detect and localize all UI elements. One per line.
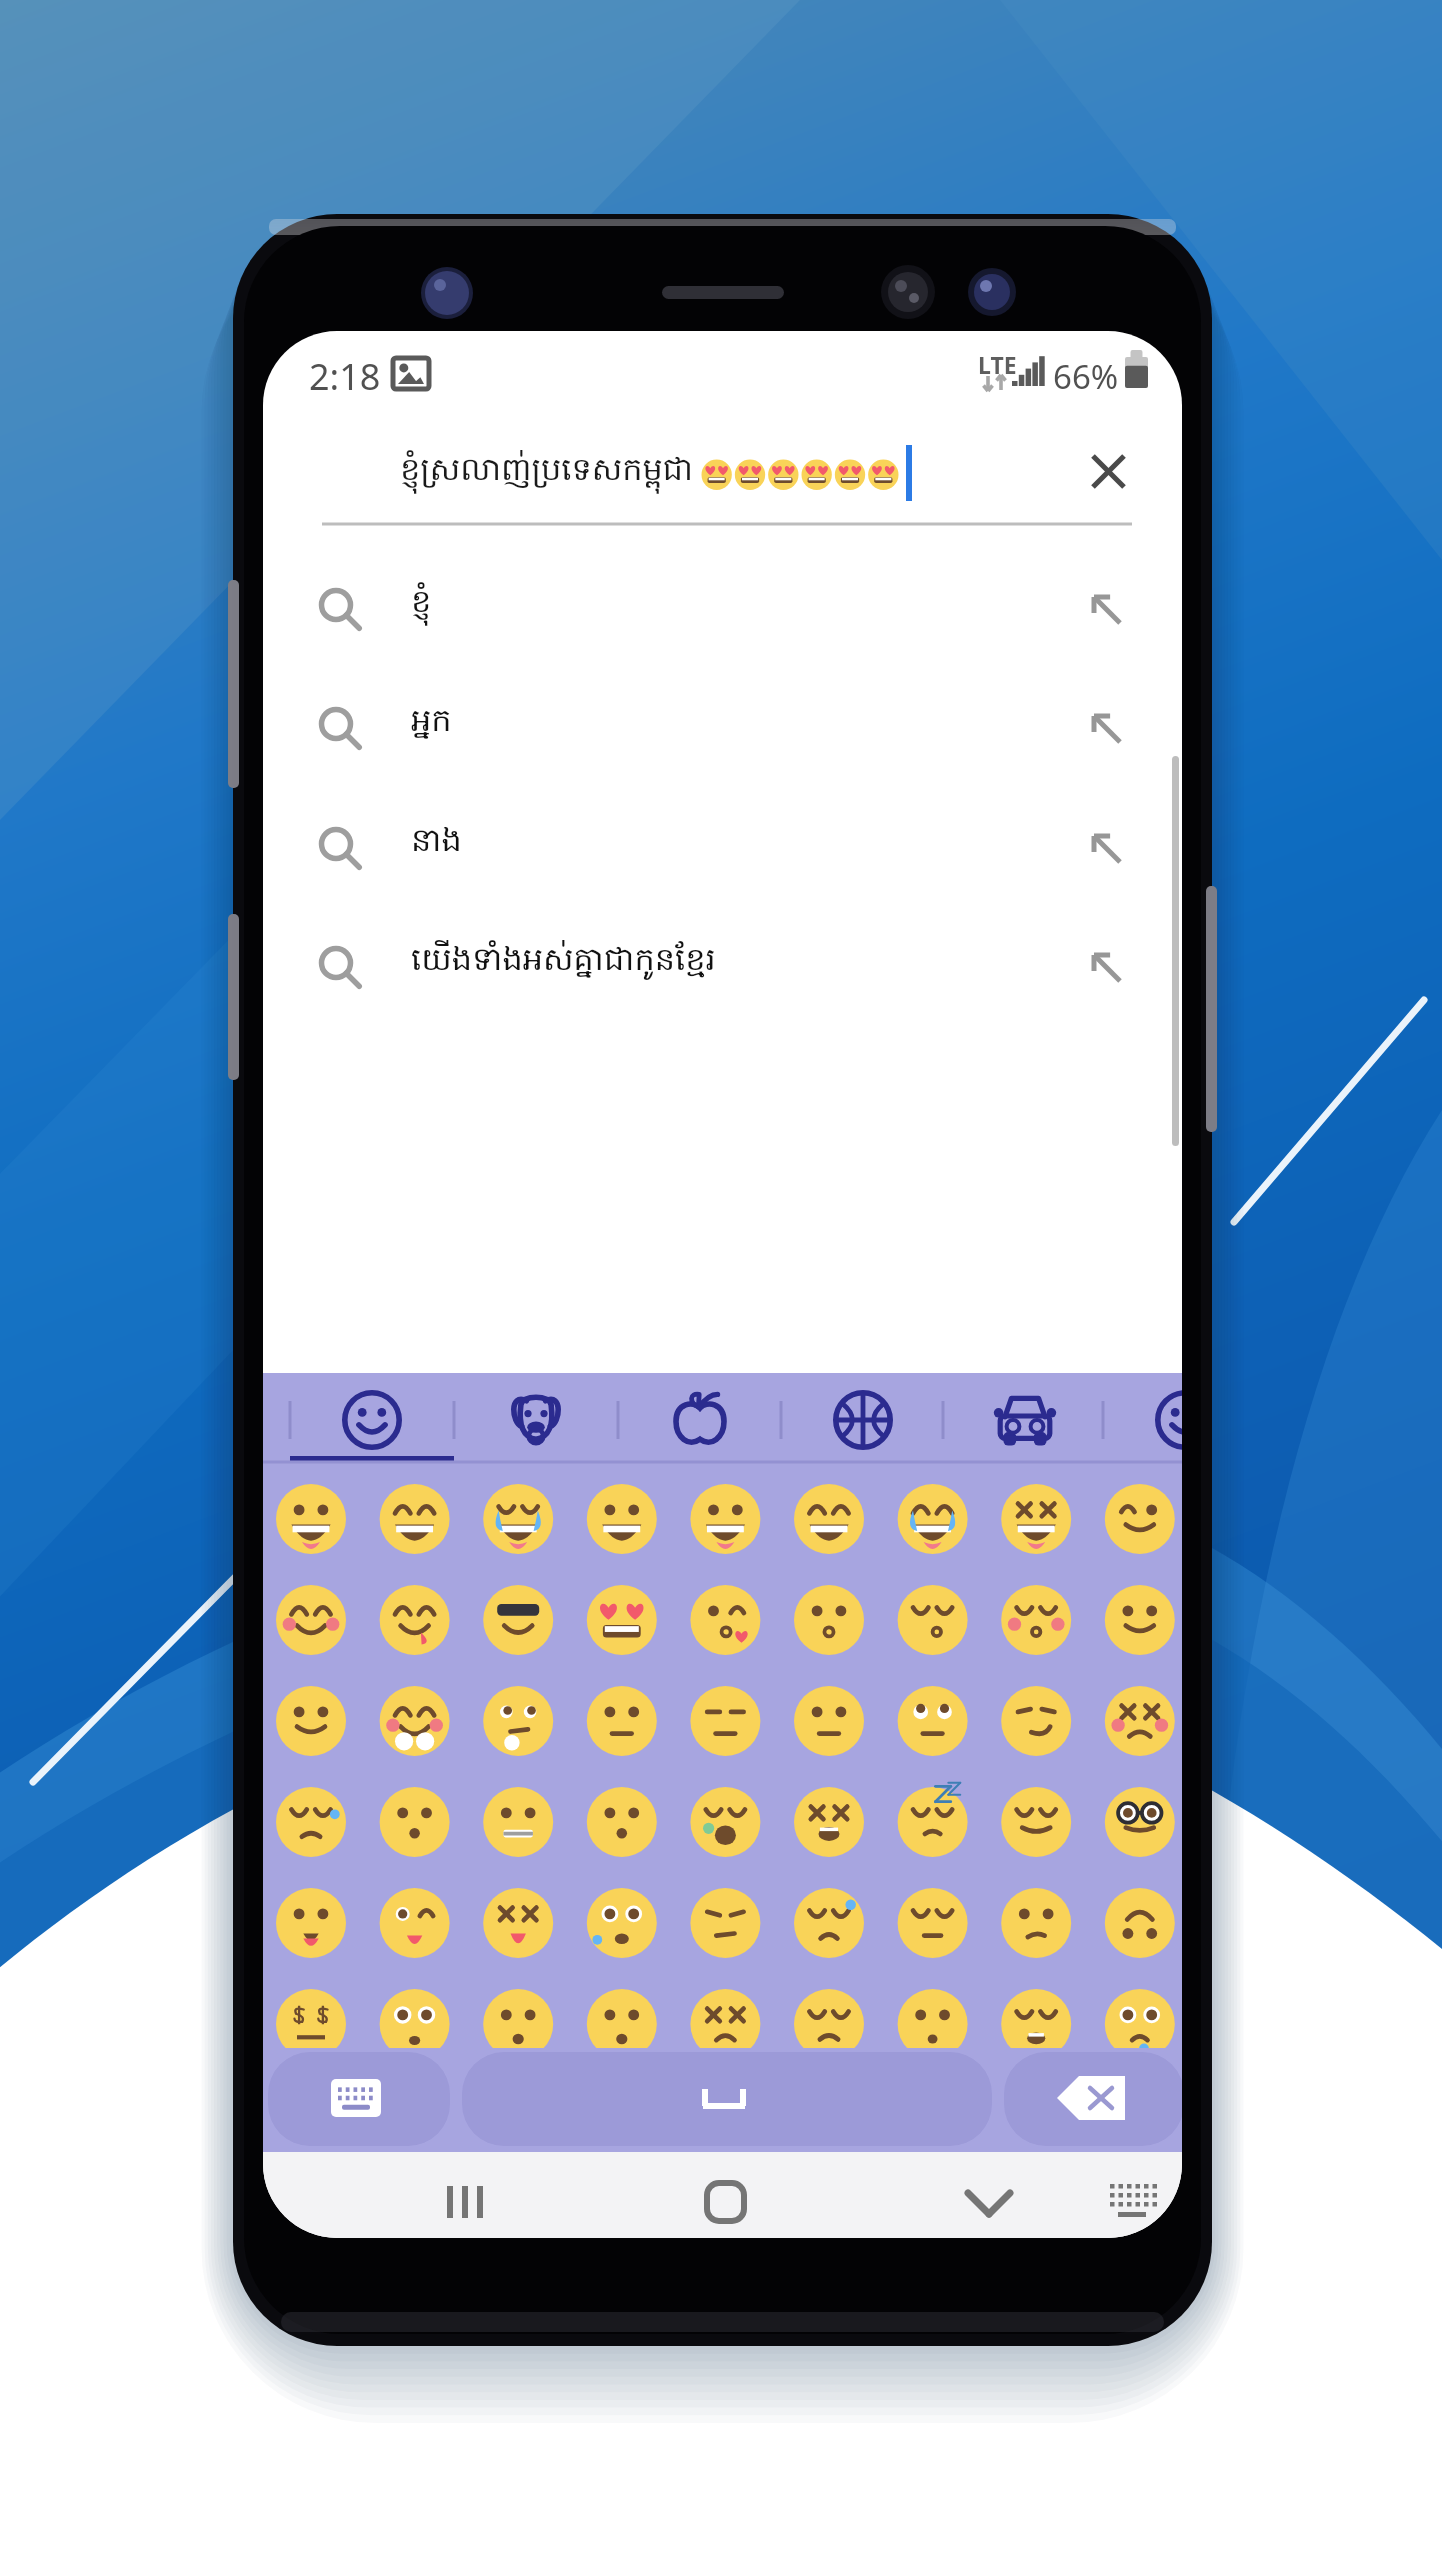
button[interactable]: More emoji xyxy=(1103,1373,1267,1462)
button[interactable]: Emoji xyxy=(570,1484,674,1585)
button[interactable]: Emoji xyxy=(466,1484,570,1585)
staticText: យើងទាំងអស់គ្នាជាកូនខ្មែរ xyxy=(411,939,716,986)
button[interactable]: Emoji xyxy=(570,1787,674,1888)
button[interactable]: Emoji xyxy=(570,1989,674,2090)
button[interactable]: Activity xyxy=(781,1373,945,1462)
button[interactable]: Backspace xyxy=(1004,2052,1184,2146)
button[interactable]: Food and drink xyxy=(618,1373,782,1462)
button[interactable]: Travel and places xyxy=(943,1373,1107,1462)
button[interactable]: Emoji xyxy=(466,1989,570,2090)
button[interactable]: Emoji xyxy=(984,1888,1088,1989)
button[interactable]: Emoji xyxy=(259,1585,363,1686)
button[interactable]: យើងទាំងអស់គ្នាជាកូនខ្មែរ xyxy=(263,904,1182,1020)
button[interactable]: Emoji xyxy=(259,1686,363,1787)
button[interactable]: Insert suggestion xyxy=(1062,799,1152,887)
button[interactable]: អ្នក xyxy=(263,665,1182,781)
button[interactable]: Emoji xyxy=(1088,1787,1192,1888)
button[interactable]: Emoji xyxy=(1088,1989,1192,2090)
button[interactable]: Emoji xyxy=(881,1585,985,1686)
button[interactable]: Emoji xyxy=(1088,1585,1192,1686)
button[interactable]: Emoji xyxy=(777,1989,881,2090)
button[interactable]: Emoji xyxy=(1088,1686,1192,1787)
button[interactable]: Insert suggestion xyxy=(1062,679,1152,767)
button[interactable]: Emoji xyxy=(466,1787,570,1888)
button[interactable]: Emoji xyxy=(881,1787,985,1888)
button[interactable]: Emoji xyxy=(673,1888,777,1989)
button[interactable]: Emoji xyxy=(984,1989,1088,2090)
button[interactable]: Emoji xyxy=(259,1989,363,2090)
button[interactable]: Emoji xyxy=(984,1484,1088,1585)
button[interactable]: Switch keyboard xyxy=(268,2052,450,2146)
staticText: 2:18 xyxy=(309,352,381,401)
button[interactable]: Clear text xyxy=(1060,423,1156,519)
staticText: ខ្ញុំ xyxy=(411,581,432,628)
button[interactable]: Emoji xyxy=(881,1888,985,1989)
button[interactable]: Emoji xyxy=(881,1484,985,1585)
staticText: នាង xyxy=(411,820,462,867)
staticText: LTE xyxy=(978,349,1017,380)
button[interactable]: ខ្ញុំ xyxy=(263,546,1182,662)
button[interactable]: Emoji xyxy=(1088,1888,1192,1989)
button[interactable]: Hide keyboard xyxy=(927,2156,1051,2238)
staticText: 66% xyxy=(1053,354,1119,399)
button[interactable]: Emoji xyxy=(673,1484,777,1585)
button[interactable]: នាង xyxy=(263,785,1182,901)
button[interactable]: Emoji xyxy=(777,1585,881,1686)
button[interactable]: Smileys and people xyxy=(290,1373,454,1462)
button[interactable]: Emoji xyxy=(363,1888,467,1989)
button[interactable]: Emoji xyxy=(984,1585,1088,1686)
button[interactable]: ខ្ញុំស្រលាញ់ប្រទេសកម្ពុជា xyxy=(322,424,1052,520)
button[interactable]: Emoji xyxy=(881,1686,985,1787)
button[interactable]: Emoji xyxy=(466,1585,570,1686)
button[interactable]: Recents xyxy=(403,2156,527,2238)
button[interactable]: Emoji xyxy=(259,1888,363,1989)
button[interactable]: Emoji xyxy=(984,1787,1088,1888)
button[interactable]: Emoji xyxy=(777,1787,881,1888)
button[interactable]: Emoji xyxy=(1088,1484,1192,1585)
button[interactable]: Emoji xyxy=(984,1686,1088,1787)
button[interactable]: Emoji xyxy=(259,1484,363,1585)
button[interactable]: Emoji xyxy=(363,1484,467,1585)
button[interactable]: Emoji xyxy=(777,1484,881,1585)
staticText: អ្នក xyxy=(411,700,452,747)
button[interactable]: Emoji xyxy=(673,1989,777,2090)
button[interactable]: Emoji xyxy=(363,1787,467,1888)
button[interactable]: Emoji xyxy=(777,1888,881,1989)
button[interactable]: Emoji xyxy=(363,1686,467,1787)
button[interactable]: Emoji xyxy=(673,1686,777,1787)
button[interactable]: Home xyxy=(663,2156,787,2238)
button[interactable]: Emoji xyxy=(466,1888,570,1989)
button[interactable]: Emoji xyxy=(570,1585,674,1686)
button[interactable]: Emoji xyxy=(363,1585,467,1686)
button[interactable]: Emoji xyxy=(881,1989,985,2090)
button[interactable]: Emoji xyxy=(777,1686,881,1787)
button[interactable]: Emoji xyxy=(673,1585,777,1686)
button[interactable]: Animals and nature xyxy=(454,1373,618,1462)
button[interactable]: Emoji xyxy=(259,1787,363,1888)
button[interactable]: Emoji xyxy=(673,1787,777,1888)
button[interactable]: Emoji xyxy=(570,1686,674,1787)
button[interactable]: Insert suggestion xyxy=(1062,918,1152,1006)
button[interactable]: Emoji xyxy=(363,1989,467,2090)
button[interactable]: Emoji xyxy=(466,1686,570,1787)
button[interactable]: Insert suggestion xyxy=(1062,560,1152,648)
button[interactable]: Choose input method xyxy=(1070,2156,1194,2238)
staticText: ខ្ញុំស្រលាញ់ប្រទេសកម្ពុជា xyxy=(400,449,694,496)
button[interactable]: Space xyxy=(462,2052,992,2146)
button[interactable]: Emoji xyxy=(570,1888,674,1989)
